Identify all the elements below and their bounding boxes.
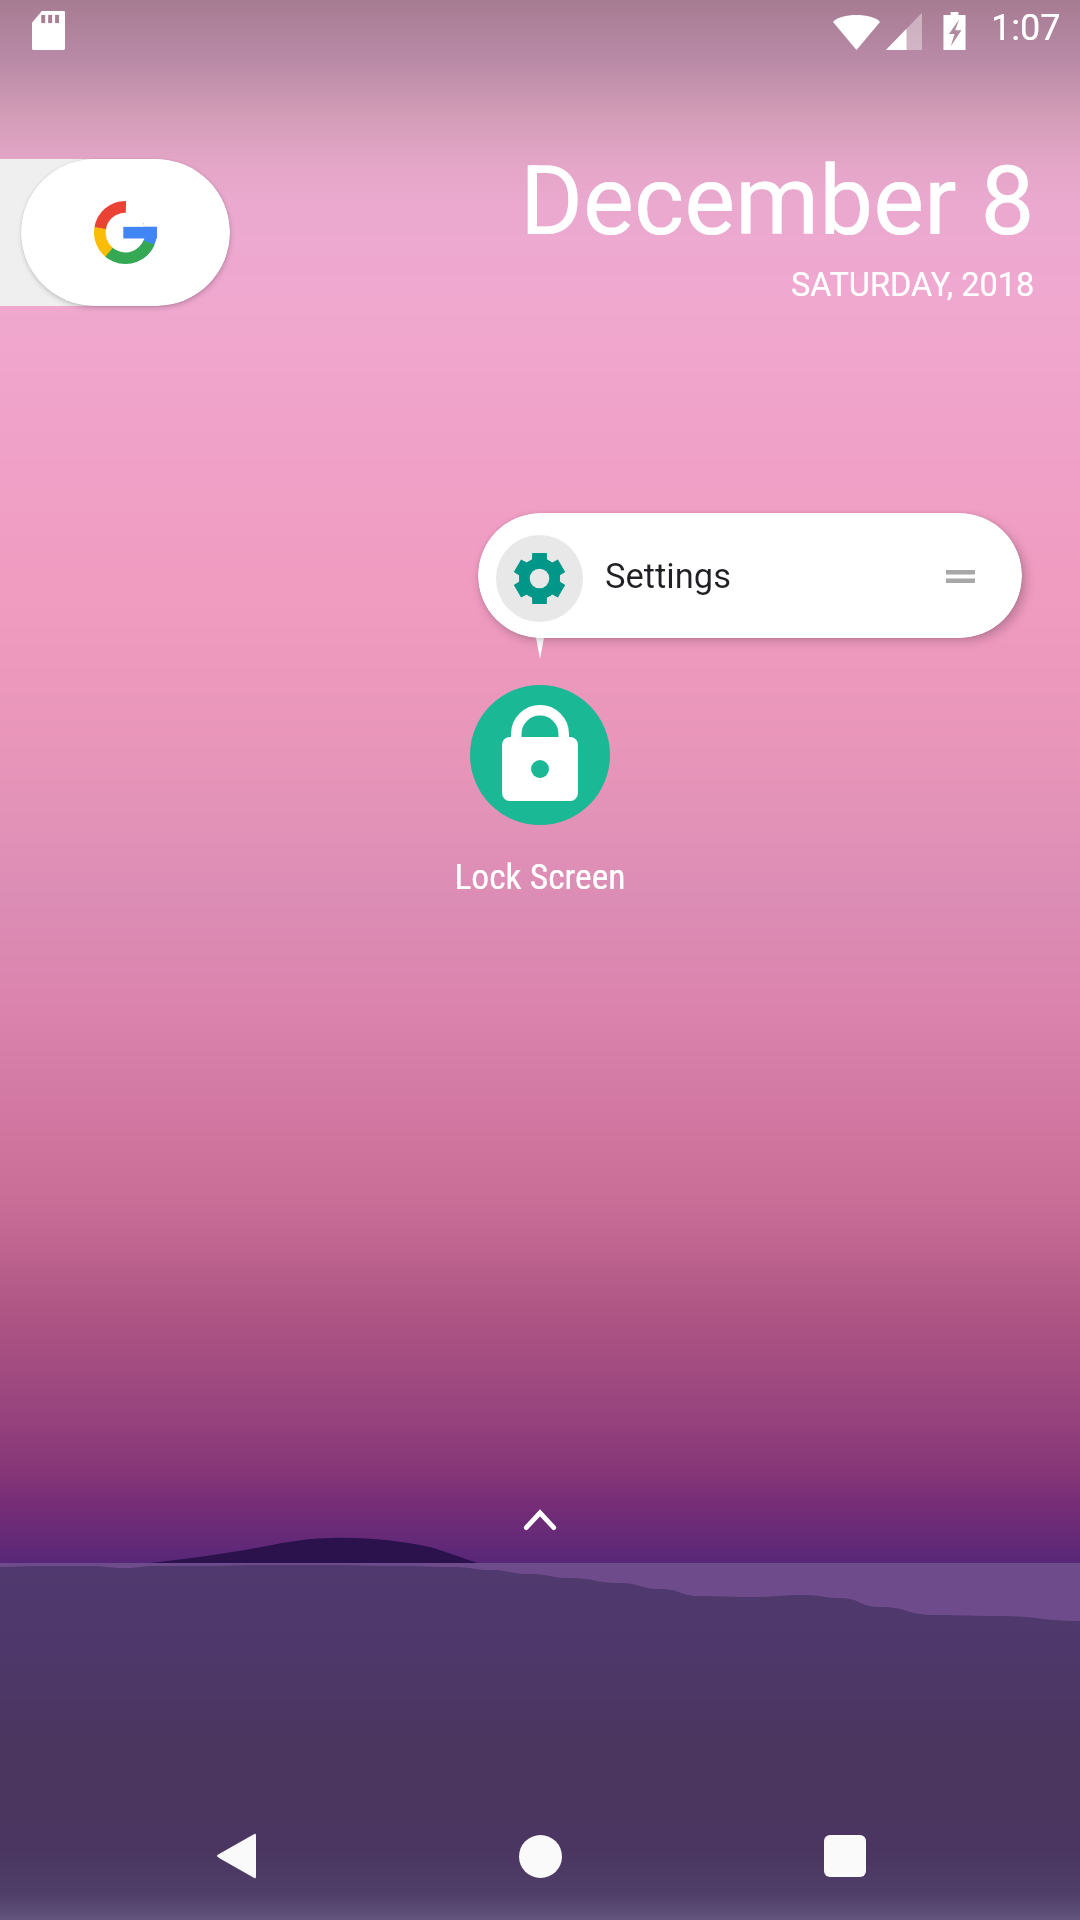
button[interactable]: Google search: [21, 159, 230, 306]
button[interactable]: Recent apps: [755, 1766, 935, 1920]
button[interactable]: Back: [146, 1766, 326, 1920]
staticText: Lock Screen: [454, 856, 626, 898]
staticText: Settings: [605, 556, 731, 596]
button[interactable]: Settings: [478, 513, 1022, 638]
staticText: December 8: [520, 145, 1035, 258]
button[interactable]: Home: [450, 1766, 630, 1920]
button[interactable]: December 8: [0, 145, 1035, 1920]
button[interactable]: Open app drawer: [480, 1460, 600, 1580]
staticText: 1:07: [991, 7, 1061, 49]
button[interactable]: Lock Screen: [380, 685, 700, 898]
staticText: SATURDAY, 2018: [791, 266, 1035, 304]
